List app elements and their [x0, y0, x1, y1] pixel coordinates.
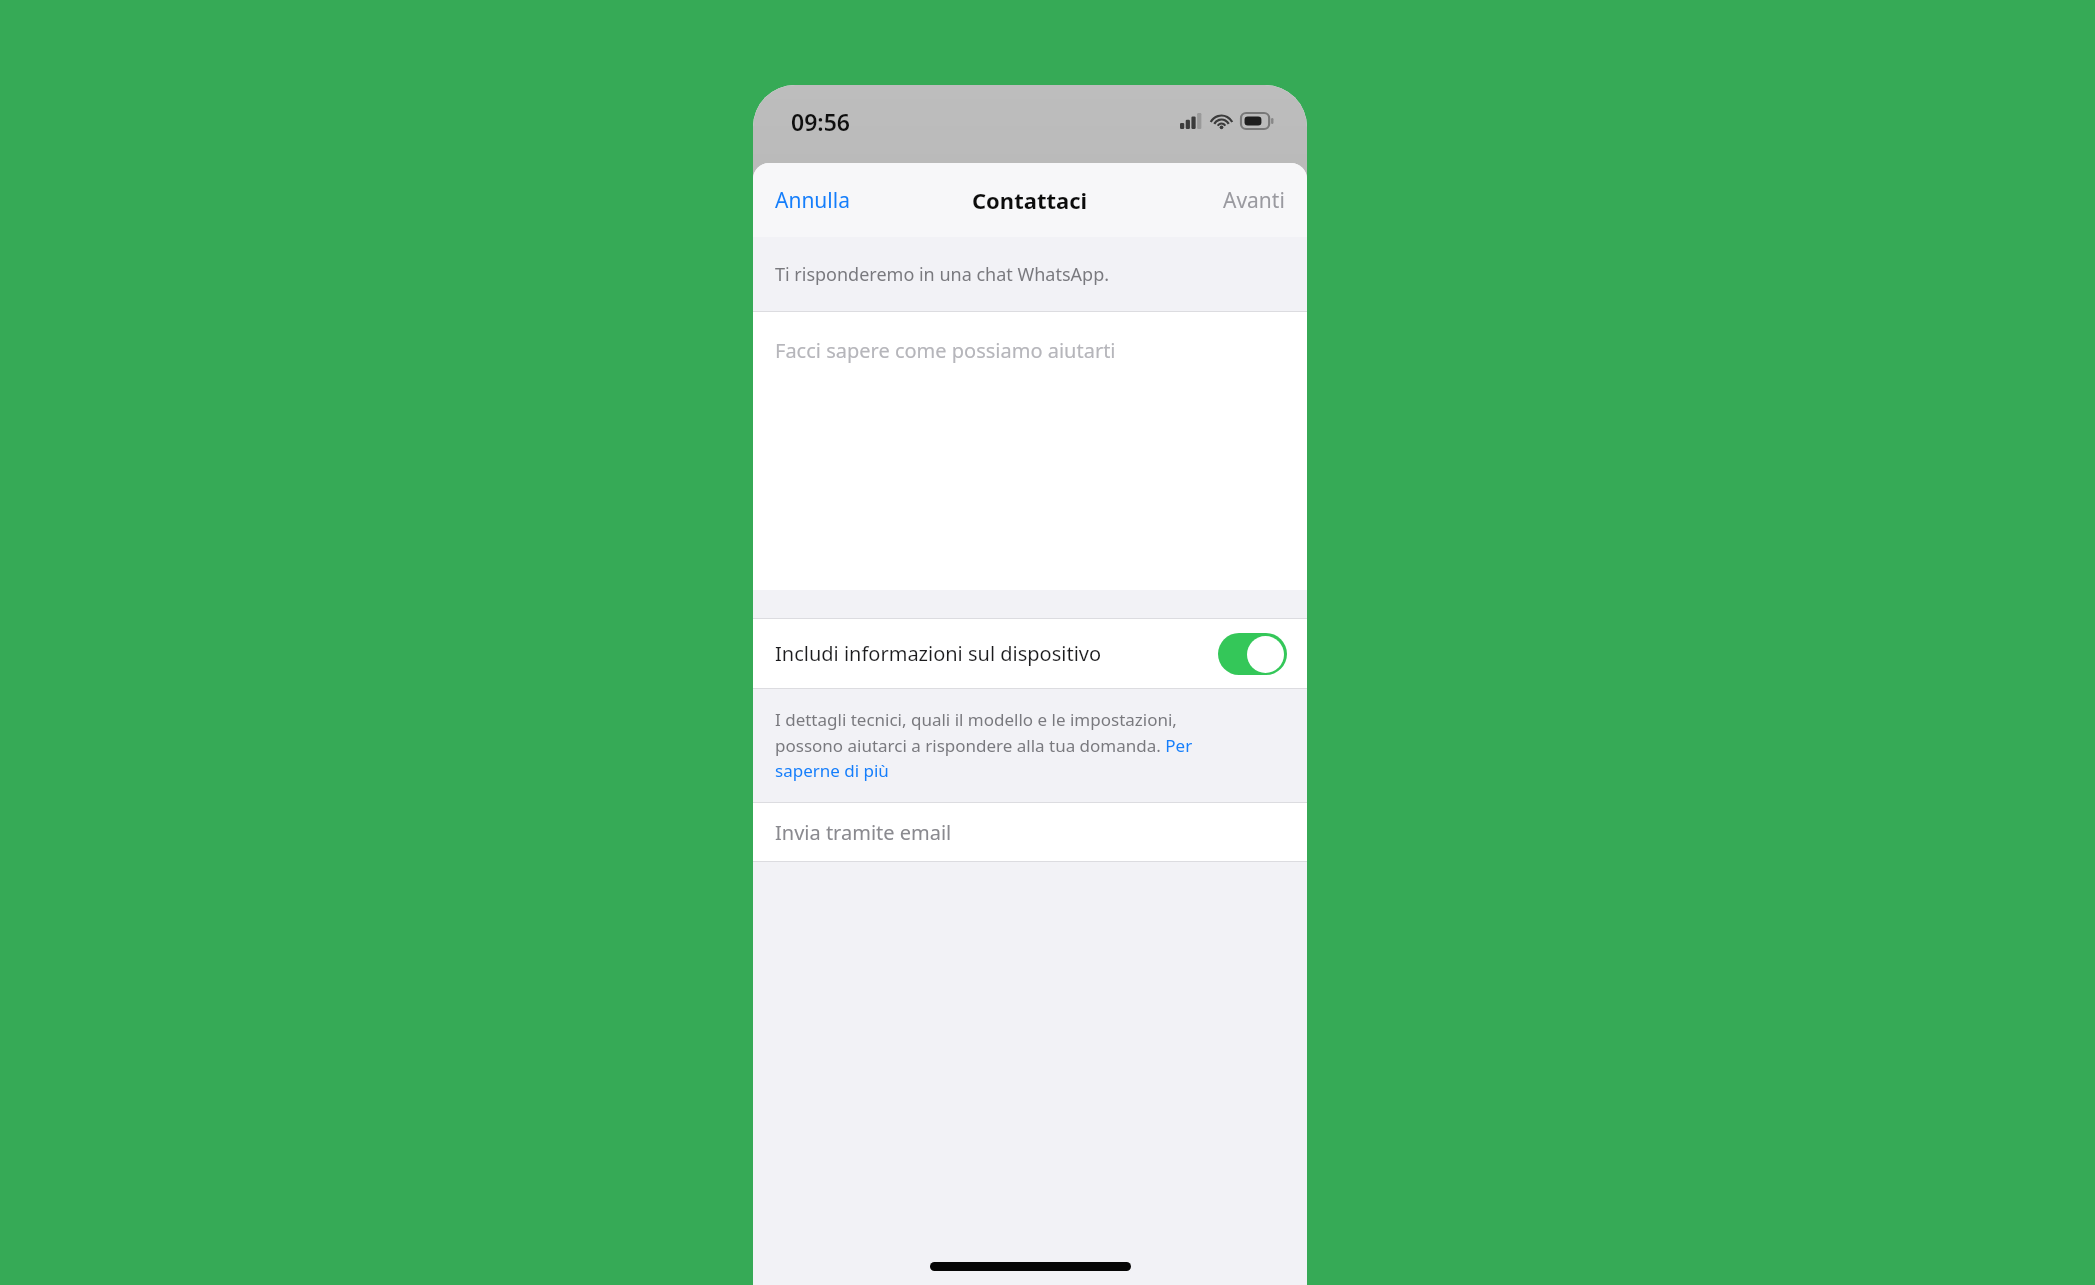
button[interactable]: Facci sapere come possiamo aiutarti — [753, 312, 1307, 590]
staticText: I dettagli tecnici, quali il modello e l… — [775, 708, 1229, 782]
staticText: Facci sapere come possiamo aiutarti — [775, 337, 1116, 364]
staticText: 09:56 — [791, 106, 850, 137]
button[interactable]: Includi informazioni sul dispositivo — [1218, 633, 1287, 675]
button[interactable]: Avanti — [1201, 174, 1307, 227]
staticText: Invia tramite email — [775, 819, 952, 846]
staticText: Includi informazioni sul dispositivo — [775, 640, 1218, 667]
button[interactable]: Includi informazioni sul dispositivo — [753, 619, 1307, 688]
staticText: WhatsApp — [971, 175, 1089, 206]
button[interactable]: Invia tramite email — [753, 803, 1307, 861]
staticText: Contattaci — [972, 185, 1088, 215]
staticText: Annulla — [775, 186, 850, 215]
staticText: Ti risponderemo in una chat WhatsApp. — [775, 262, 1110, 287]
button[interactable]: Annulla — [753, 174, 872, 227]
staticText: Avanti — [1223, 186, 1285, 215]
